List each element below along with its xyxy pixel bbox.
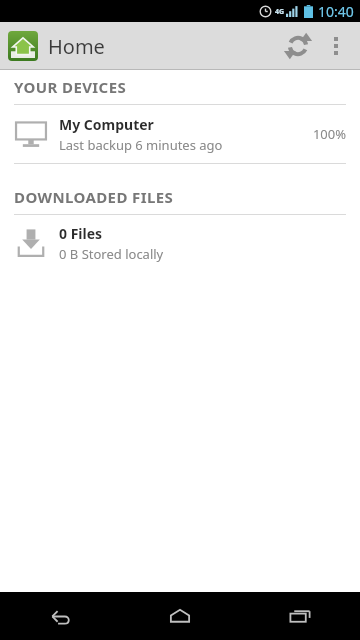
staticText: 10:40: [318, 2, 354, 21]
button[interactable]: Back: [0, 592, 120, 640]
staticText: Home: [48, 33, 105, 60]
button[interactable]: Refresh: [276, 24, 320, 68]
staticText: 100%: [312, 125, 346, 143]
button[interactable]: Home: [120, 592, 240, 640]
staticText: 4G: [275, 7, 285, 17]
button[interactable]: Recent apps: [240, 592, 360, 640]
staticText: My Computer: [59, 115, 154, 134]
staticText: DOWNLOADED FILES: [14, 187, 174, 207]
button[interactable]: More options: [320, 24, 352, 68]
button[interactable]: My Computer: [0, 105, 360, 163]
button[interactable]: 0 Files: [0, 215, 360, 271]
button[interactable]: Home app icon: [8, 31, 38, 61]
staticText: YOUR DEVICES: [14, 77, 127, 97]
staticText: Last backup 6 minutes ago: [59, 136, 223, 154]
staticText: 0 Files: [59, 224, 103, 243]
staticText: 0 B Stored locally: [59, 245, 164, 263]
